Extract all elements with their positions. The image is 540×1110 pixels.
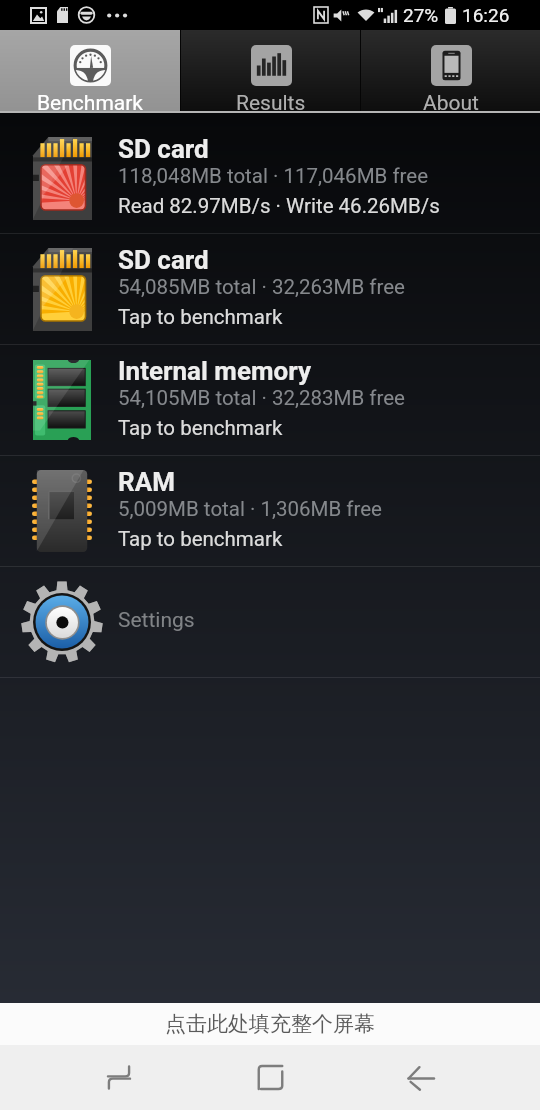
staticText: Internal memory xyxy=(118,356,311,386)
staticText: Tap to benchmark xyxy=(118,305,283,329)
staticText: Settings xyxy=(118,608,195,633)
staticText: 118,048MB total · 117,046MB free xyxy=(118,164,429,188)
button[interactable]: Settings xyxy=(0,567,540,677)
staticText: SD card xyxy=(118,245,209,275)
button[interactable]: Results xyxy=(181,30,360,113)
button[interactable]: Home xyxy=(210,1045,330,1110)
staticText: Tap to benchmark xyxy=(118,416,283,440)
staticText: 27% xyxy=(403,4,439,26)
button[interactable]: Back xyxy=(330,1045,540,1110)
staticText: About xyxy=(423,91,479,116)
button[interactable]: SD card xyxy=(0,234,540,344)
button[interactable]: SD card xyxy=(0,123,540,233)
staticText: 16:26 xyxy=(462,4,510,26)
button[interactable]: About xyxy=(361,30,540,113)
staticText: Results xyxy=(236,91,306,116)
staticText: Read 82.97MB/s · Write 46.26MB/s xyxy=(118,194,440,218)
button[interactable]: Benchmark xyxy=(0,30,180,113)
staticText: 54,105MB total · 32,283MB free xyxy=(118,386,405,410)
staticText: RAM xyxy=(118,467,175,497)
staticText: Benchmark xyxy=(37,91,143,116)
button[interactable]: RAM xyxy=(0,456,540,566)
button[interactable]: Recent apps xyxy=(0,1045,210,1110)
staticText: 点击此处填充整个屏幕 xyxy=(165,1011,375,1037)
staticText: 54,085MB total · 32,263MB free xyxy=(118,275,405,299)
staticText: Tap to benchmark xyxy=(118,527,283,551)
staticText: SD card xyxy=(118,134,209,164)
staticText: 5,009MB total · 1,306MB free xyxy=(118,497,382,521)
button[interactable]: Internal memory xyxy=(0,345,540,455)
